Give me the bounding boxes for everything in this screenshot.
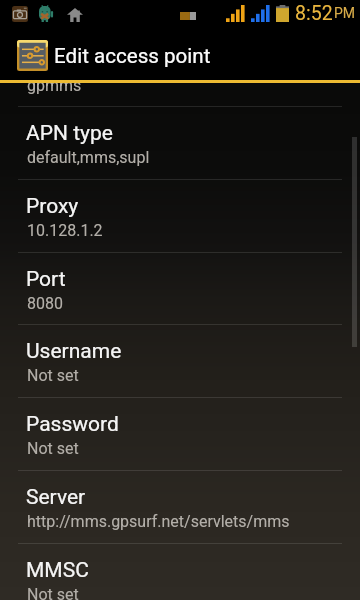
staticText: Password <box>26 412 119 437</box>
staticText: Not set <box>27 366 79 385</box>
button[interactable]: Username <box>0 325 360 397</box>
staticText: Username <box>26 339 122 364</box>
staticText: 8080 <box>27 294 63 313</box>
button[interactable]: Proxy <box>0 180 360 252</box>
other: Access point settings, up <box>17 40 48 71</box>
button[interactable]: MMSC <box>0 544 360 600</box>
staticText: Port <box>26 267 66 292</box>
button[interactable]: Password <box>0 398 360 470</box>
staticText: Server <box>26 485 86 510</box>
button[interactable]: Access point settings, up <box>0 26 225 80</box>
staticText: default,mms,supl <box>27 148 150 167</box>
staticText: http://mms.gpsurf.net/servlets/mms <box>27 512 290 531</box>
staticText: Proxy <box>26 194 79 219</box>
button[interactable]: Server <box>0 471 360 543</box>
button[interactable]: APN type <box>0 107 360 179</box>
button[interactable]: Port <box>0 253 360 325</box>
staticText: 10.128.1.2 <box>27 221 103 240</box>
staticText: Not set <box>27 585 79 600</box>
staticText: PM <box>334 5 356 21</box>
staticText: APN type <box>26 121 113 146</box>
staticText: gpmms <box>27 76 82 95</box>
staticText: MMSC <box>26 558 89 583</box>
staticText: Edit access point <box>54 44 211 68</box>
staticText: Not set <box>27 439 79 458</box>
staticText: 8:52 <box>295 2 333 25</box>
